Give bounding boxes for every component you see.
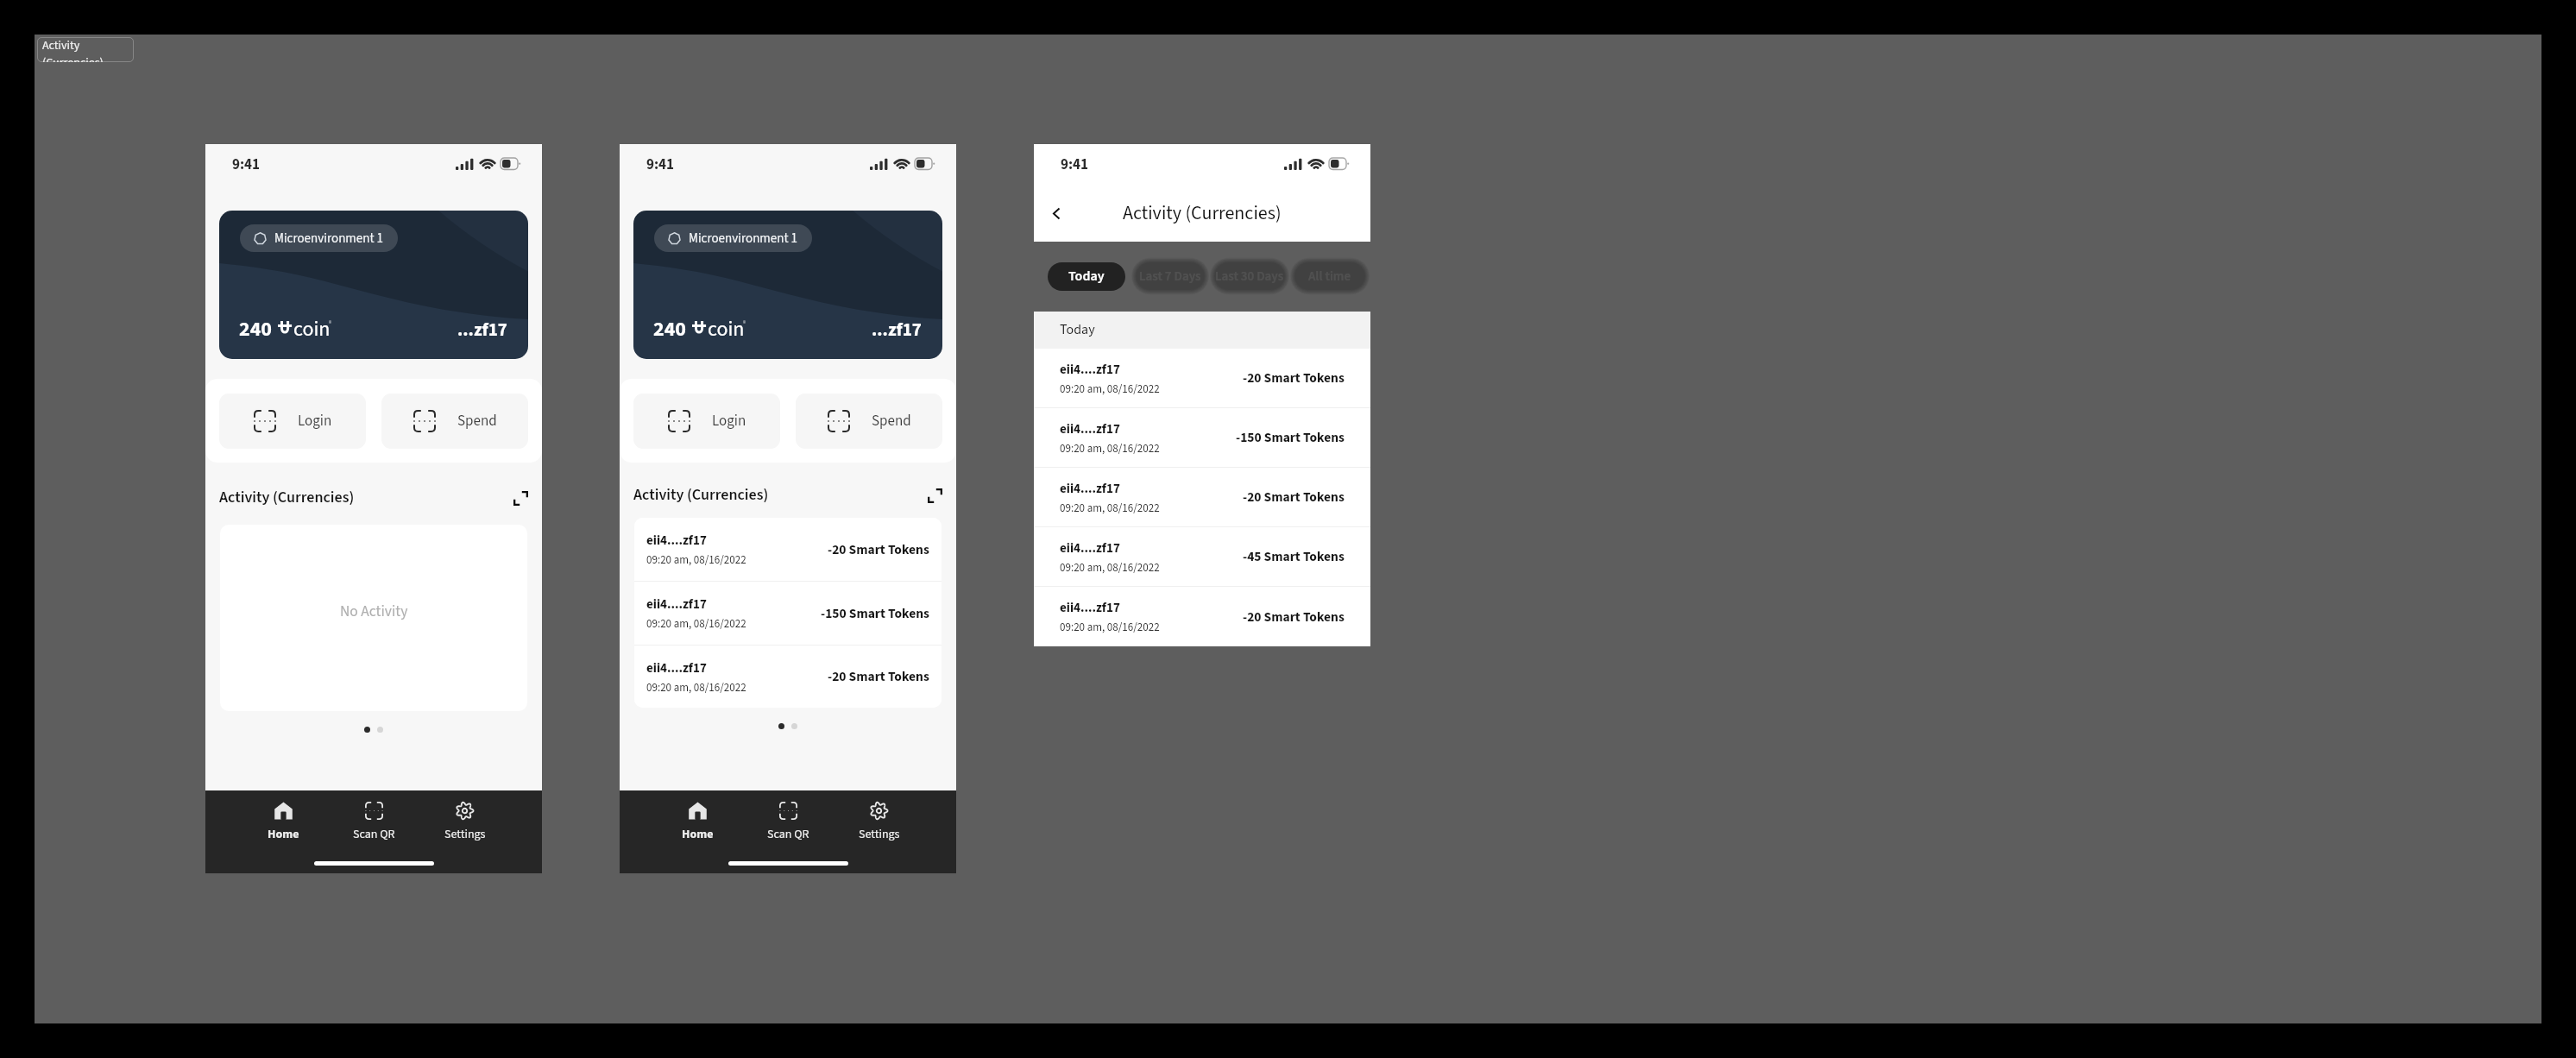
- staticText: Activity (Currencies): [1123, 199, 1282, 226]
- button[interactable]: Microenvironment 1: [633, 211, 942, 359]
- staticText: 9:41: [232, 154, 261, 175]
- button[interactable]: Login: [219, 394, 366, 449]
- staticText: 09:20 am, 08/16/2022: [1060, 381, 1160, 398]
- staticText: ...zf17: [457, 317, 507, 343]
- staticText: eii4....zf17: [646, 659, 707, 677]
- staticText: Spend: [457, 411, 497, 431]
- button[interactable]: eii4....zf17: [646, 646, 929, 708]
- button[interactable]: Scan QR: [743, 799, 834, 843]
- button[interactable]: Spend: [796, 394, 942, 449]
- staticText: No Activity: [340, 601, 408, 622]
- staticText: -20 Smart Tokens: [828, 667, 929, 686]
- staticText: ®: [743, 319, 746, 328]
- staticText: Home: [682, 826, 714, 843]
- button[interactable]: Last 7 Days: [1131, 256, 1209, 296]
- button[interactable]: Microenvironment 1: [668, 224, 797, 252]
- staticText: Activity (Currencies): [219, 487, 355, 509]
- button[interactable]: Back: [1042, 198, 1071, 228]
- button[interactable]: eii4....zf17: [1060, 349, 1345, 407]
- button[interactable]: Microenvironment 1: [219, 211, 528, 359]
- button[interactable]: eii4....zf17: [1060, 527, 1345, 586]
- staticText: 9:41: [646, 154, 675, 175]
- staticText: Microenvironment 1: [274, 230, 383, 248]
- staticText: 09:20 am, 08/16/2022: [646, 680, 746, 696]
- button[interactable]: Home: [238, 799, 329, 843]
- staticText: Today: [1068, 267, 1105, 287]
- button[interactable]: Microenvironment 1: [254, 224, 383, 252]
- staticText: coin: [708, 314, 745, 343]
- staticText: Settings: [444, 826, 486, 843]
- staticText: eii4....zf17: [1060, 480, 1120, 498]
- staticText: 240: [653, 314, 687, 343]
- staticText: 09:20 am, 08/16/2022: [646, 552, 746, 569]
- button[interactable]: All time: [1290, 256, 1370, 296]
- staticText: -20 Smart Tokens: [1243, 608, 1345, 627]
- button[interactable]: eii4....zf17: [1060, 408, 1345, 467]
- button[interactable]: eii4....zf17: [1060, 468, 1345, 526]
- staticText: eii4....zf17: [646, 595, 707, 614]
- staticText: Login: [298, 411, 332, 431]
- button[interactable]: Last 30 Days: [1210, 256, 1289, 296]
- staticText: Settings: [859, 826, 900, 843]
- button[interactable]: Spend: [381, 394, 528, 449]
- staticText: Last 30 Days: [1215, 268, 1284, 286]
- staticText: eii4....zf17: [1060, 420, 1120, 438]
- staticText: 09:20 am, 08/16/2022: [1060, 560, 1160, 576]
- staticText: -150 Smart Tokens: [821, 604, 929, 623]
- staticText: 09:20 am, 08/16/2022: [646, 616, 746, 633]
- button[interactable]: Scan QR: [329, 799, 419, 843]
- button[interactable]: Login: [633, 394, 780, 449]
- button[interactable]: eii4....zf17: [1060, 587, 1345, 646]
- button[interactable]: Home: [652, 799, 743, 843]
- staticText: -150 Smart Tokens: [1236, 428, 1345, 447]
- staticText: Scan QR: [353, 826, 395, 843]
- staticText: Microenvironment 1: [689, 230, 797, 248]
- staticText: -45 Smart Tokens: [1243, 547, 1345, 566]
- staticText: Login: [712, 411, 746, 431]
- button[interactable]: Today: [1068, 262, 1105, 291]
- staticText: All time: [1308, 268, 1351, 286]
- staticText: Today: [1060, 320, 1095, 340]
- staticText: ...zf17: [872, 317, 922, 343]
- staticText: Activity (Currencies): [633, 484, 769, 507]
- staticText: -20 Smart Tokens: [1243, 488, 1345, 507]
- staticText: coin: [293, 314, 331, 343]
- staticText: -20 Smart Tokens: [1243, 368, 1345, 387]
- staticText: 9:41: [1061, 154, 1089, 175]
- staticText: 09:20 am, 08/16/2022: [1060, 441, 1160, 457]
- staticText: eii4....zf17: [646, 532, 707, 550]
- staticText: ®: [329, 319, 331, 328]
- staticText: eii4....zf17: [1060, 539, 1120, 557]
- staticText: Home: [268, 826, 299, 843]
- other: Expand: [928, 488, 942, 503]
- button[interactable]: Settings: [834, 799, 924, 843]
- staticText: Last 7 Days: [1139, 268, 1201, 286]
- staticText: 240: [239, 314, 273, 343]
- staticText: eii4....zf17: [1060, 361, 1120, 379]
- staticText: 09:20 am, 08/16/2022: [1060, 620, 1160, 636]
- staticText: Scan QR: [767, 826, 809, 843]
- staticText: -20 Smart Tokens: [828, 540, 929, 559]
- button[interactable]: Settings: [419, 799, 510, 843]
- staticText: eii4....zf17: [1060, 599, 1120, 617]
- staticText: Spend: [872, 411, 911, 431]
- staticText: 09:20 am, 08/16/2022: [1060, 501, 1160, 517]
- staticText: Activity (Currencies): [42, 37, 134, 62]
- button[interactable]: eii4....zf17: [646, 582, 929, 645]
- button[interactable]: eii4....zf17: [646, 518, 929, 581]
- other: Expand: [513, 491, 528, 506]
